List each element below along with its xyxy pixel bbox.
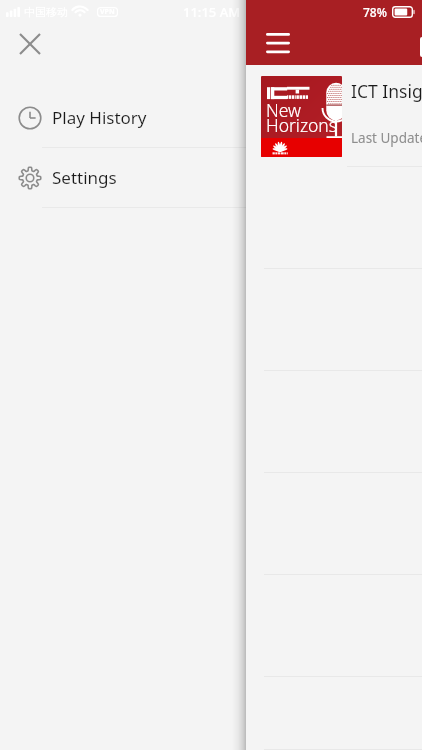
staticText: ICT Insights New Horizons (351, 79, 422, 103)
button[interactable]: Close (12, 26, 48, 62)
button[interactable]: Menu (256, 23, 298, 65)
staticText: 11:15 AM (183, 3, 241, 21)
button[interactable] (0, 371, 422, 473)
button[interactable] (0, 677, 422, 750)
button[interactable] (0, 167, 422, 269)
button[interactable] (0, 473, 422, 575)
staticText: Play History (52, 106, 147, 129)
staticText: Horizons (266, 113, 337, 137)
staticText: 中国移动 (24, 5, 68, 19)
button[interactable]: Search (404, 23, 422, 65)
button[interactable]: Settings (0, 148, 246, 207)
button[interactable]: Play History (0, 88, 246, 147)
staticText: 78% (363, 4, 387, 20)
staticText: Last Update: 2021-12-28 (351, 129, 422, 147)
button[interactable] (0, 575, 422, 677)
staticText: VPN (100, 7, 115, 17)
button[interactable] (0, 269, 422, 371)
staticText: New (266, 98, 301, 122)
staticText: Settings (52, 166, 117, 189)
